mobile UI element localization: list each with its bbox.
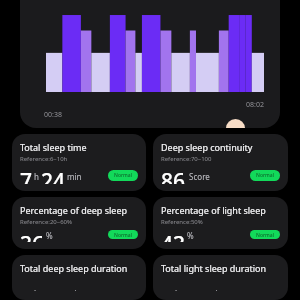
staticText: 00:38 [44,110,62,120]
staticText: Percentage of deep sleep [20,204,128,216]
staticText: Reference:6~10h [20,155,68,163]
staticText: min [67,171,82,182]
staticText: Total light sleep duration [161,262,267,274]
button[interactable]: Normal [108,230,138,239]
staticText: 43 [161,230,186,242]
button[interactable]: Percentage of deep sleep [12,197,146,249]
button[interactable]: Total sleep time [12,134,146,191]
staticText: Normal [256,232,274,237]
staticText: h [34,171,39,182]
button[interactable]: Deep sleep continuity [153,134,288,191]
staticText: Total sleep time [20,141,87,153]
staticText: Score [187,171,210,182]
button[interactable]: Normal [250,170,280,181]
staticText: min [208,288,223,291]
staticText: 08:02 [246,100,264,110]
staticText: % [46,230,53,240]
staticText: Total deep sleep duration [20,262,128,274]
button[interactable]: Total light sleep duration [153,255,288,300]
staticText: Reference:70~100 [161,155,212,163]
staticText: Deep sleep continuity [161,141,253,153]
staticText: Percentage of light sleep [161,204,266,216]
button[interactable]: 00:38 [20,0,280,128]
staticText: h [34,288,39,291]
staticText: 86 [161,167,186,184]
button[interactable]: Normal [250,230,280,239]
staticText: 36 [20,230,45,242]
staticText: 7 [20,167,33,184]
staticText: % [187,230,194,240]
staticText: 24 [41,167,66,184]
staticText: min [67,288,82,291]
staticText: Reference:20~60% [20,218,73,226]
staticText: h [175,288,180,291]
staticText: Normal [114,172,132,179]
button[interactable]: Total deep sleep duration [12,255,146,300]
button[interactable]: Wake time marker [226,119,245,128]
staticText: Normal [256,172,274,179]
staticText: Reference:50% [161,218,203,226]
button[interactable]: Normal [108,170,138,181]
staticText: Normal [114,232,132,237]
button[interactable]: Percentage of light sleep [153,197,288,249]
